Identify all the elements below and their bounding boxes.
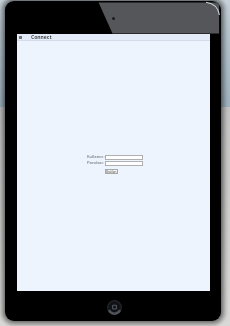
staticText: Parolası: — [87, 160, 104, 166]
staticText: Bağlan — [106, 170, 117, 174]
button[interactable]: Open navigation menu — [18, 35, 22, 40]
button[interactable] — [105, 161, 143, 166]
button[interactable] — [105, 155, 143, 160]
staticText: Connect — [31, 34, 52, 40]
button[interactable]: Home — [107, 300, 122, 315]
button[interactable]: Bağlan — [105, 169, 118, 174]
staticText: Kullanıcı: — [87, 154, 105, 160]
